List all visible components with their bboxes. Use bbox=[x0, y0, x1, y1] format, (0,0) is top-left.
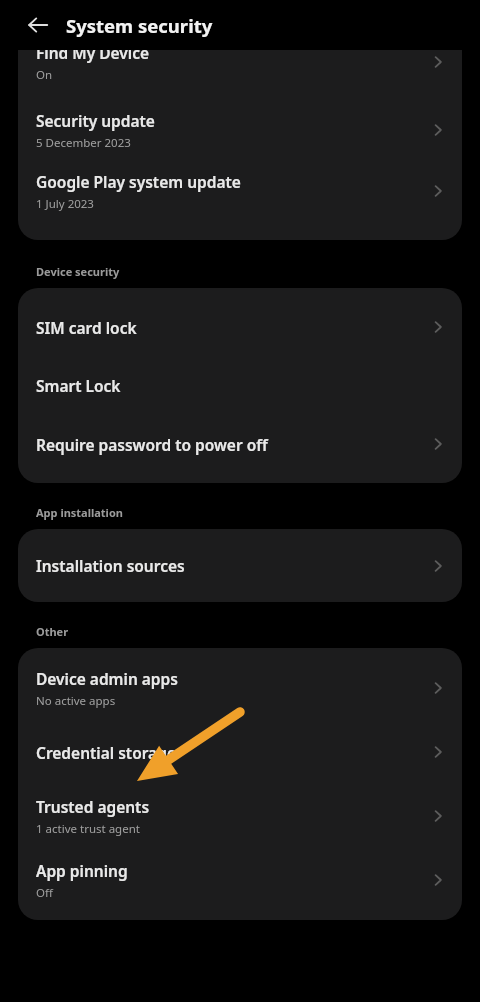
staticText: No active apps bbox=[36, 693, 116, 709]
staticText: Security update bbox=[36, 110, 155, 131]
button[interactable]: Require password to power off bbox=[18, 415, 462, 473]
staticText: Installation sources bbox=[36, 555, 185, 576]
staticText: Credential storage bbox=[36, 742, 176, 763]
button[interactable]: Device admin apps bbox=[18, 656, 462, 720]
button[interactable]: Installation sources bbox=[18, 539, 462, 592]
button[interactable]: Security update bbox=[18, 96, 462, 164]
staticText: Off bbox=[36, 885, 53, 901]
staticText: SIM card lock bbox=[36, 317, 137, 338]
button[interactable]: SIM card lock bbox=[18, 298, 462, 356]
staticText: Require password to power off bbox=[36, 434, 268, 455]
button[interactable]: Smart Lock bbox=[18, 356, 462, 415]
staticText: Other bbox=[36, 624, 69, 639]
staticText: 1 active trust agent bbox=[36, 821, 140, 837]
staticText: Google Play system update bbox=[36, 171, 241, 192]
staticText: 1 July 2023 bbox=[36, 196, 94, 212]
staticText: App pinning bbox=[36, 860, 128, 881]
button[interactable]: Google Play system update bbox=[18, 164, 462, 218]
staticText: On bbox=[36, 67, 53, 83]
staticText: Trusted agents bbox=[36, 796, 150, 817]
button[interactable]: App pinning bbox=[18, 848, 462, 912]
button[interactable]: Back bbox=[16, 3, 60, 47]
staticText: Device security bbox=[36, 264, 120, 279]
staticText: Smart Lock bbox=[36, 375, 121, 396]
button[interactable]: Credential storage bbox=[18, 720, 462, 784]
button[interactable]: Trusted agents bbox=[18, 784, 462, 848]
staticText: System security bbox=[66, 13, 213, 38]
staticText: Device admin apps bbox=[36, 668, 178, 689]
staticText: Find My Device bbox=[36, 50, 150, 63]
staticText: 5 December 2023 bbox=[36, 135, 131, 151]
button[interactable]: Find My Device bbox=[18, 50, 462, 96]
staticText: App installation bbox=[36, 505, 123, 520]
